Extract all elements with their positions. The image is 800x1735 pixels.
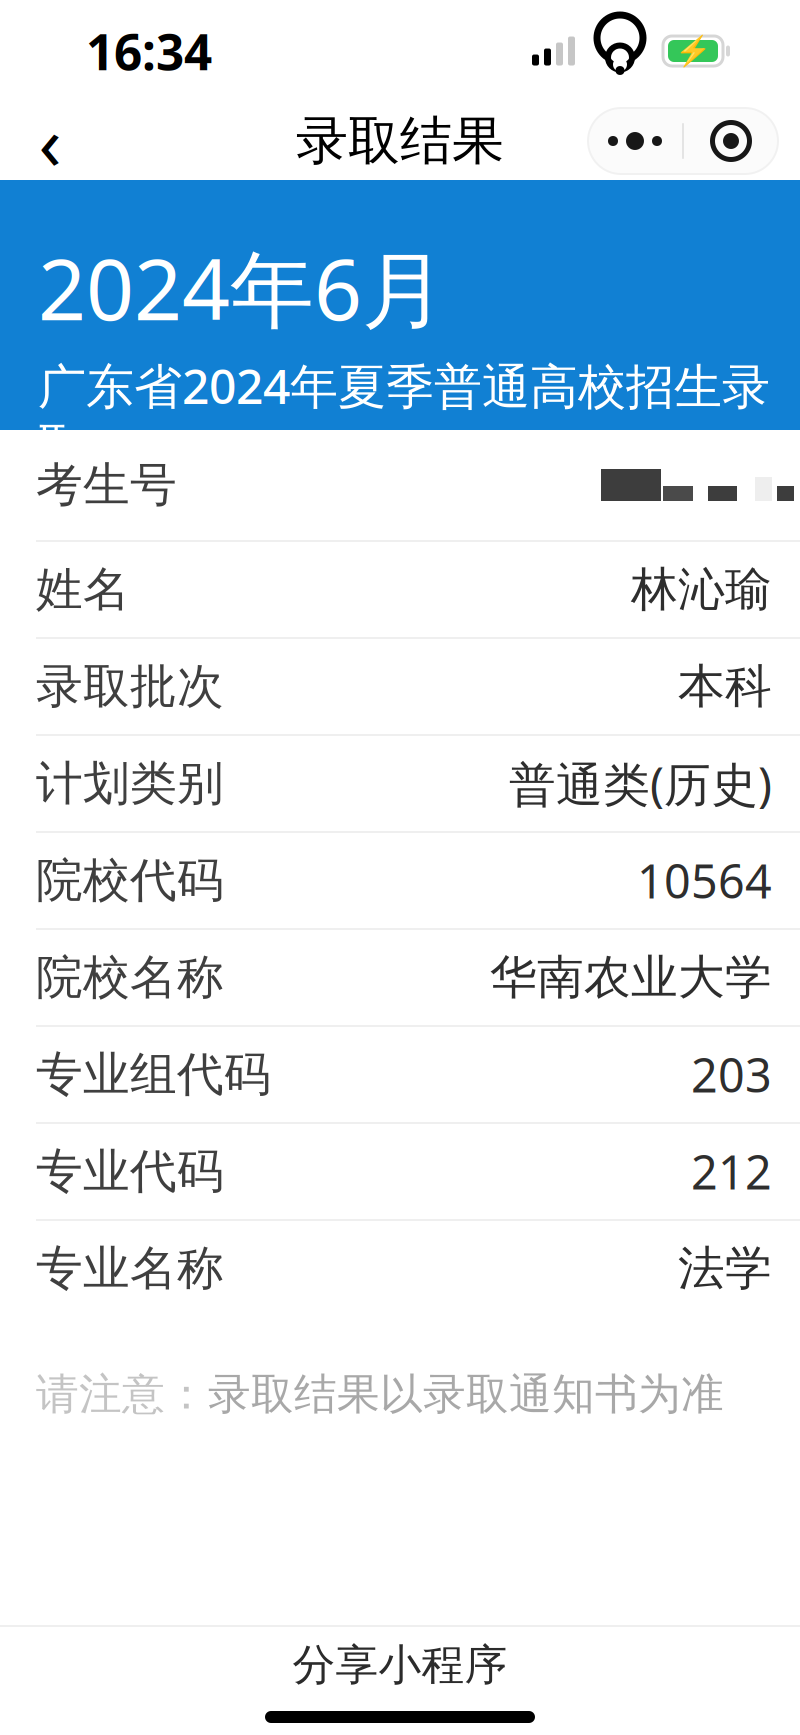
- staticText: 16:34: [86, 18, 212, 84]
- staticText: 考生号: [36, 456, 177, 514]
- staticText: 院校名称: [36, 949, 224, 1006]
- staticText: 院校代码: [36, 852, 224, 909]
- staticText: 2024年6月: [38, 232, 446, 343]
- staticText: 华南农业大学: [490, 949, 772, 1006]
- staticText: 专业组代码: [36, 1046, 271, 1103]
- staticText: ‹: [38, 91, 61, 191]
- staticText: 本科: [678, 658, 772, 715]
- staticText: 林沁瑜: [631, 561, 772, 618]
- staticText: 录取结果: [296, 109, 504, 173]
- staticText: 普通类(历史): [509, 752, 772, 814]
- staticText: 专业名称: [36, 1240, 224, 1297]
- staticText: 请注意：: [36, 1368, 208, 1420]
- staticText: ⚡: [674, 34, 711, 68]
- staticText: 10564: [637, 849, 772, 911]
- staticText: 姓名: [36, 561, 130, 618]
- button[interactable]: 关闭: [684, 108, 778, 174]
- staticText: 法学: [678, 1240, 772, 1297]
- staticText: 212: [691, 1140, 772, 1202]
- staticText: 录取结果以录取通知书为准: [208, 1368, 724, 1420]
- staticText: 广东省2024年夏季普通高校招生录取: [38, 353, 770, 476]
- staticText: 专业代码: [36, 1143, 224, 1200]
- button[interactable]: 分享小程序: [0, 1627, 800, 1703]
- staticText: 计划类别: [36, 755, 224, 812]
- button[interactable]: 返回: [10, 102, 90, 180]
- staticText: 录取批次: [36, 658, 224, 715]
- staticText: 分享小程序: [292, 1639, 507, 1691]
- staticText: 203: [691, 1043, 772, 1105]
- button[interactable]: 更多: [588, 108, 682, 174]
